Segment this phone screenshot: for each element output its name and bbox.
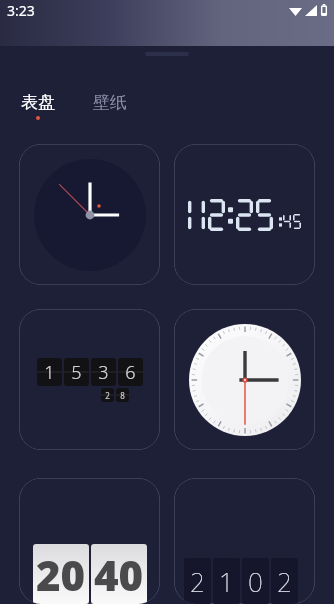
staticText: 3 bbox=[98, 360, 109, 385]
button[interactable]: Watch face preview bbox=[19, 478, 160, 604]
button[interactable]: Watch face preview bbox=[19, 144, 160, 285]
staticText: 40 bbox=[94, 546, 144, 603]
staticText: 5 bbox=[71, 360, 82, 385]
button[interactable]: Watch face preview bbox=[174, 478, 315, 604]
staticText: 2 bbox=[277, 564, 292, 599]
staticText: 表盘 bbox=[21, 92, 55, 113]
staticText: 6 bbox=[125, 360, 136, 385]
staticText: 1 bbox=[44, 360, 55, 385]
button[interactable]: Watch face preview bbox=[174, 309, 315, 450]
button[interactable]: 表盘 bbox=[19, 90, 57, 122]
staticText: 2 bbox=[105, 390, 110, 401]
staticText: 壁纸 bbox=[93, 92, 127, 113]
staticText: 20 bbox=[36, 546, 86, 603]
button[interactable]: Watch face preview bbox=[174, 144, 315, 285]
staticText: 1 bbox=[219, 564, 234, 599]
staticText: 2 bbox=[190, 564, 205, 599]
staticText: 8 bbox=[120, 390, 125, 401]
button[interactable]: 壁纸 bbox=[91, 90, 129, 122]
button[interactable]: Watch face preview bbox=[19, 309, 160, 450]
staticText: 3:23 bbox=[7, 1, 35, 20]
staticText: 0 bbox=[248, 564, 263, 599]
